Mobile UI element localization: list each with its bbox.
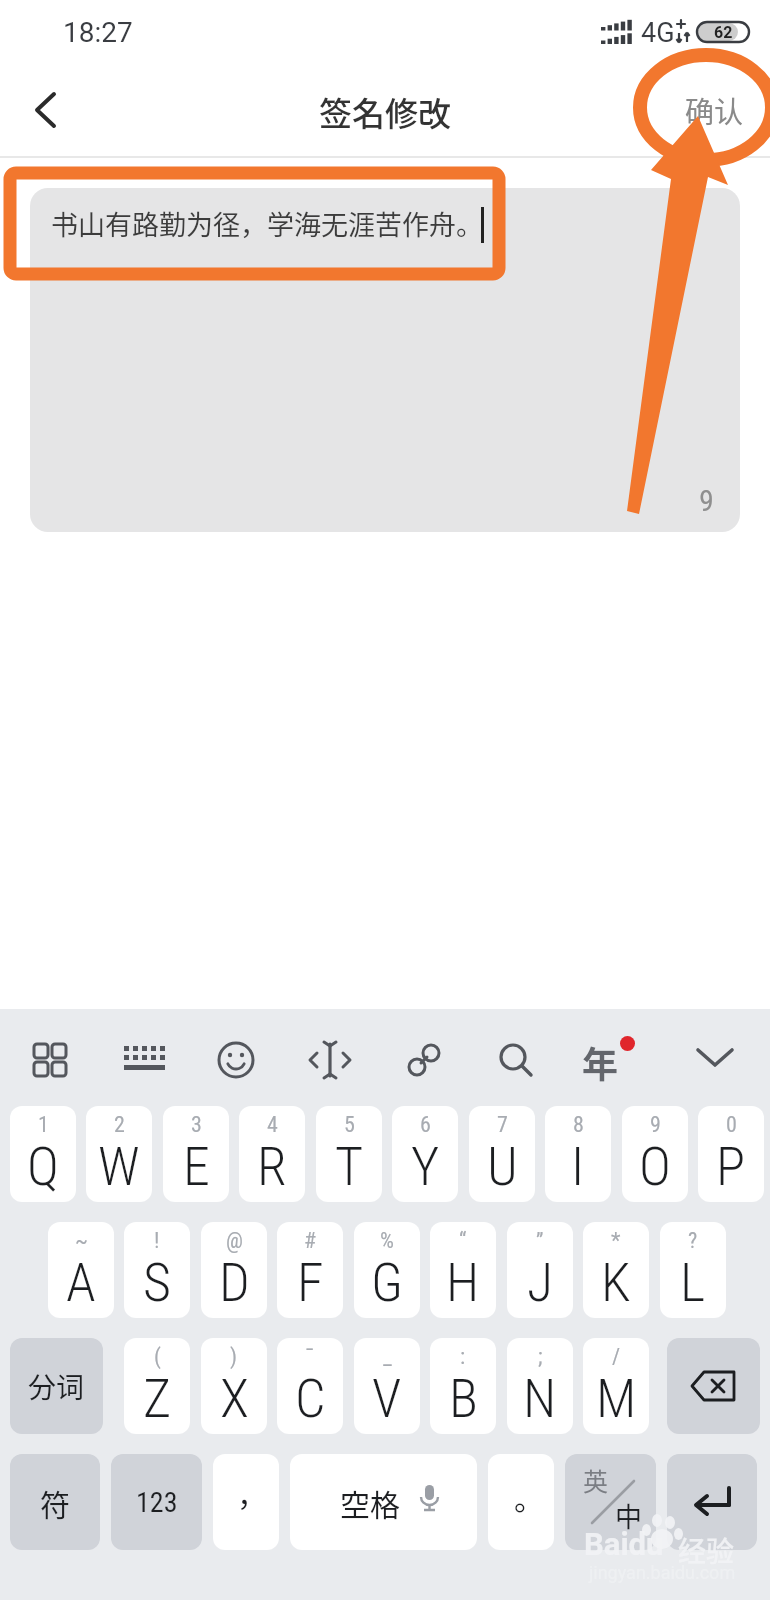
staticText: 书山有路勤为径，学海无涯苦作舟。 bbox=[51, 204, 483, 243]
staticText: P bbox=[716, 1135, 746, 1198]
staticText: Z bbox=[143, 1367, 172, 1430]
button[interactable] bbox=[308, 1038, 352, 1082]
staticText: E bbox=[183, 1135, 210, 1198]
staticText: O bbox=[639, 1135, 671, 1198]
staticText: ; bbox=[538, 1344, 543, 1370]
button[interactable]: 空格 bbox=[290, 1454, 477, 1550]
staticText: 英 bbox=[583, 1462, 609, 1498]
staticText: : bbox=[460, 1344, 466, 1370]
staticText: A bbox=[66, 1251, 96, 1314]
staticText: 0 bbox=[726, 1112, 737, 1138]
staticText: 1 bbox=[38, 1112, 49, 1138]
button[interactable]: * bbox=[583, 1222, 649, 1318]
staticText: 分词 bbox=[28, 1366, 85, 1407]
staticText: 签名修改 bbox=[0, 88, 770, 136]
button[interactable]: 确认 bbox=[666, 84, 762, 136]
button[interactable]: ˉ bbox=[277, 1338, 343, 1434]
staticText: D bbox=[219, 1251, 250, 1314]
staticText: W bbox=[98, 1135, 140, 1198]
button[interactable] bbox=[214, 1038, 258, 1082]
staticText: “ bbox=[459, 1228, 467, 1254]
staticText: 3 bbox=[191, 1112, 202, 1138]
button[interactable] bbox=[694, 1038, 738, 1082]
button[interactable]: 3 bbox=[163, 1106, 229, 1202]
staticText: 5 bbox=[344, 1112, 355, 1138]
button[interactable] bbox=[667, 1454, 757, 1550]
button[interactable]: : bbox=[430, 1338, 496, 1434]
staticText: ! bbox=[154, 1228, 160, 1254]
button[interactable] bbox=[20, 85, 70, 135]
staticText: ” bbox=[536, 1228, 544, 1254]
button[interactable]: “ bbox=[430, 1222, 496, 1318]
button[interactable]: 4 bbox=[239, 1106, 305, 1202]
staticText: 4G bbox=[641, 17, 675, 49]
staticText: ˉ bbox=[305, 1344, 315, 1370]
button[interactable]: / bbox=[583, 1338, 649, 1434]
button[interactable]: ! bbox=[124, 1222, 190, 1318]
button[interactable]: ~ bbox=[48, 1222, 114, 1318]
staticText: 9 bbox=[650, 1112, 661, 1138]
staticText: ) bbox=[230, 1344, 238, 1370]
staticText: # bbox=[304, 1228, 317, 1254]
staticText: F bbox=[297, 1251, 324, 1314]
button[interactable]: 1 bbox=[10, 1106, 76, 1202]
button[interactable]: 9 bbox=[622, 1106, 688, 1202]
button[interactable]: ， bbox=[213, 1454, 279, 1550]
button[interactable]: ; bbox=[507, 1338, 573, 1434]
button[interactable]: 英 bbox=[565, 1454, 656, 1550]
staticText: @ bbox=[226, 1228, 243, 1254]
staticText: M bbox=[596, 1367, 637, 1430]
button[interactable]: ( bbox=[124, 1338, 190, 1434]
button[interactable]: 分词 bbox=[10, 1338, 103, 1434]
staticText: G bbox=[371, 1251, 404, 1314]
button[interactable]: 123 bbox=[111, 1454, 202, 1550]
staticText: 123 bbox=[136, 1486, 178, 1519]
staticText: Q bbox=[27, 1135, 59, 1198]
staticText: _ bbox=[383, 1344, 392, 1370]
button[interactable]: 书山有路勤为径，学海无涯苦作舟。 bbox=[30, 188, 740, 532]
staticText: 9 bbox=[699, 483, 714, 518]
staticText: J bbox=[527, 1251, 554, 1314]
button[interactable]: 7 bbox=[469, 1106, 535, 1202]
button[interactable]: _ bbox=[354, 1338, 420, 1434]
staticText: S bbox=[143, 1251, 171, 1314]
staticText: 6 bbox=[420, 1112, 431, 1138]
button[interactable]: ) bbox=[201, 1338, 267, 1434]
button[interactable]: @ bbox=[201, 1222, 267, 1318]
button[interactable]: 6 bbox=[392, 1106, 458, 1202]
staticText: 62 bbox=[714, 23, 733, 42]
staticText: K bbox=[601, 1251, 631, 1314]
staticText: 确认 bbox=[685, 89, 744, 131]
staticText: 符 bbox=[40, 1481, 70, 1524]
button[interactable] bbox=[28, 1038, 72, 1082]
staticText: C bbox=[295, 1367, 326, 1430]
staticText: L bbox=[680, 1251, 706, 1314]
staticText: / bbox=[612, 1344, 621, 1370]
button[interactable]: 8 bbox=[545, 1106, 611, 1202]
button[interactable]: % bbox=[354, 1222, 420, 1318]
button[interactable]: 0 bbox=[698, 1106, 764, 1202]
staticText: I bbox=[571, 1135, 585, 1198]
button[interactable]: 5 bbox=[316, 1106, 382, 1202]
button[interactable]: # bbox=[277, 1222, 343, 1318]
button[interactable]: 2 bbox=[86, 1106, 152, 1202]
staticText: 18:27 bbox=[63, 16, 133, 49]
staticText: % bbox=[380, 1228, 394, 1254]
button[interactable]: ” bbox=[507, 1222, 573, 1318]
button[interactable]: 年 bbox=[578, 1034, 634, 1086]
button[interactable]: 符 bbox=[10, 1454, 100, 1550]
staticText: ， bbox=[237, 1471, 267, 1514]
staticText: 4 bbox=[267, 1112, 278, 1138]
staticText: B bbox=[449, 1367, 478, 1430]
button[interactable] bbox=[494, 1038, 538, 1082]
staticText: H bbox=[446, 1251, 480, 1314]
button[interactable] bbox=[123, 1038, 167, 1082]
button[interactable] bbox=[402, 1038, 446, 1082]
staticText: ? bbox=[688, 1228, 698, 1254]
staticText: 。 bbox=[514, 1475, 544, 1518]
staticText: 7 bbox=[497, 1112, 508, 1138]
button[interactable]: 。 bbox=[488, 1454, 554, 1550]
button[interactable] bbox=[667, 1338, 760, 1434]
staticText: N bbox=[523, 1367, 557, 1430]
button[interactable]: ? bbox=[660, 1222, 726, 1318]
